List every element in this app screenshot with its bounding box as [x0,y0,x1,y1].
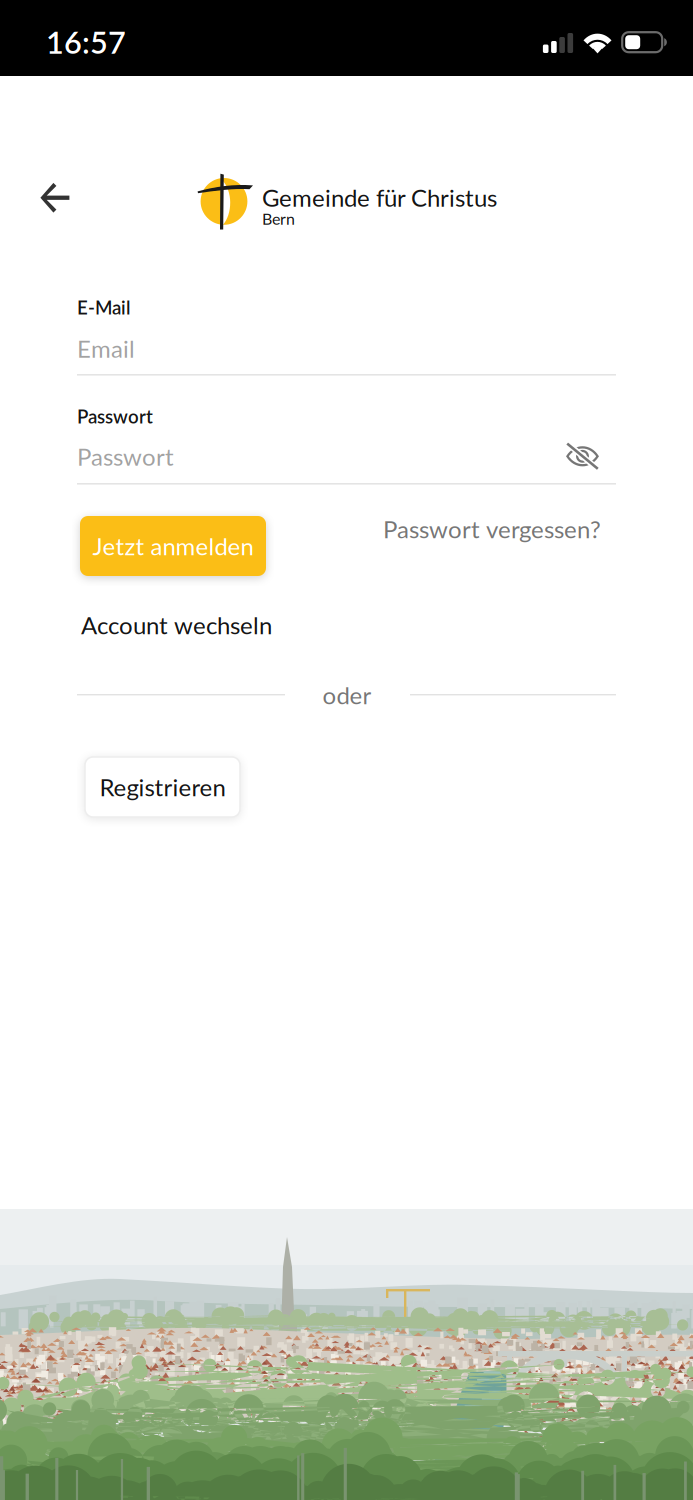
staticText: oder [322,681,371,709]
staticText: Passwort vergessen? [383,515,601,543]
staticText: 16:57 [46,24,126,60]
button[interactable]: Jetzt anmelden [80,516,266,576]
button[interactable]: Passwort vergessen? [383,514,613,544]
staticText: Email [77,334,135,363]
staticText: Jetzt anmelden [92,532,253,560]
staticText: Gemeinde für Christus [262,183,497,212]
staticText: Bern [262,209,295,228]
staticText: Registrieren [99,773,225,801]
staticText: Passwort [77,442,174,471]
staticText: E-Mail [77,296,131,318]
button[interactable]: Show password [566,443,599,470]
button[interactable]: Registrieren [85,757,240,817]
staticText: Account wechseln [81,611,272,639]
staticText: Passwort [77,405,153,427]
button[interactable]: Back [24,167,86,229]
button[interactable]: Account wechseln [81,610,341,640]
